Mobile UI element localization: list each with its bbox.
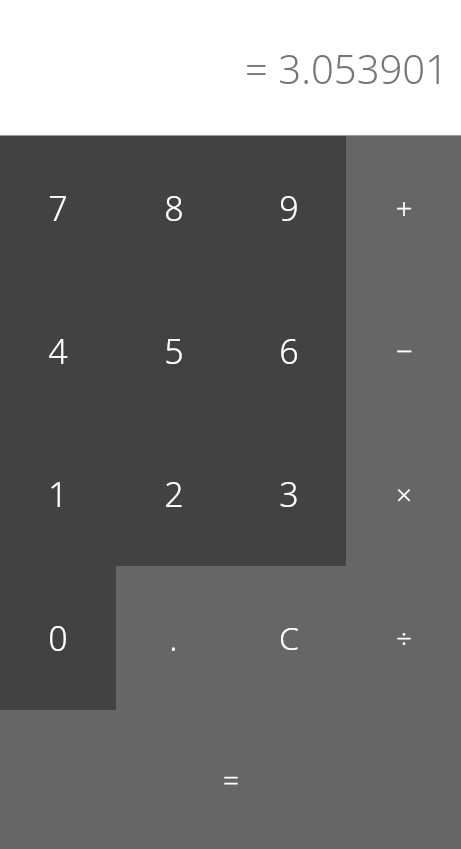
button[interactable]: 9 — [231, 136, 346, 279]
button[interactable]: Equals — [0, 710, 461, 849]
staticText: 6 — [279, 328, 299, 374]
staticText: 2 — [164, 471, 184, 517]
staticText: 1 — [48, 471, 68, 517]
staticText: 9 — [279, 185, 299, 231]
button[interactable]: 7 — [0, 136, 116, 279]
staticText: 4 — [48, 328, 68, 374]
button[interactable]: 1 — [0, 422, 116, 566]
staticText: 3 — [279, 471, 299, 517]
button[interactable]: 5 — [116, 279, 231, 422]
button[interactable]: Multiply — [346, 422, 461, 566]
button[interactable]: Clear — [231, 566, 346, 710]
staticText: C — [279, 616, 299, 660]
staticText: 8 — [164, 185, 184, 231]
button[interactable]: 4 — [0, 279, 116, 422]
staticText: = — [223, 761, 239, 799]
staticText: = 3.053901 — [245, 41, 448, 95]
staticText: 7 — [48, 185, 68, 231]
button[interactable]: 8 — [116, 136, 231, 279]
button[interactable]: Decimal point — [116, 566, 231, 710]
staticText: 0 — [48, 615, 68, 661]
staticText: × — [396, 475, 412, 513]
button[interactable]: Divide — [346, 566, 461, 710]
staticText: + — [395, 187, 413, 228]
staticText: . — [169, 615, 178, 661]
button[interactable]: 0 — [0, 566, 116, 710]
button[interactable]: Plus — [346, 136, 461, 279]
staticText: − — [395, 330, 413, 371]
button[interactable]: Minus — [346, 279, 461, 422]
staticText: 5 — [164, 328, 184, 374]
button[interactable]: 6 — [231, 279, 346, 422]
button[interactable]: 2 — [116, 422, 231, 566]
staticText: ÷ — [396, 619, 412, 657]
button[interactable]: 3 — [231, 422, 346, 566]
